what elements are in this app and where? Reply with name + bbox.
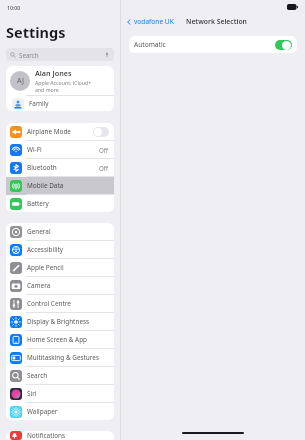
staticText: Settings [6, 22, 66, 42]
button[interactable]: Battery [6, 195, 114, 212]
staticText: Control Centre [27, 299, 109, 308]
button[interactable]: Siri [6, 385, 114, 403]
button[interactable]: Camera [6, 277, 114, 295]
button[interactable]: Apple Pencil [6, 259, 114, 277]
button[interactable]: Multitasking & Gestures [6, 349, 114, 367]
staticText: 10:00 [7, 4, 21, 11]
button[interactable]: General [6, 223, 114, 241]
staticText: Siri [27, 389, 109, 398]
staticText: Off [99, 164, 109, 172]
button[interactable]: Search [6, 48, 114, 61]
staticText: Family [29, 99, 49, 108]
staticText: Wallpaper [27, 407, 109, 416]
staticText: Display & Brightness [27, 317, 109, 326]
staticText: Airplane Mode [27, 127, 93, 136]
button[interactable]: Family [12, 96, 109, 111]
button[interactable]: Back to vodafone UK [126, 17, 174, 26]
staticText: Network Selection [186, 17, 247, 26]
staticText: Search [19, 51, 104, 59]
button[interactable]: Search [6, 367, 114, 385]
staticText: Multitasking & Gestures [27, 353, 109, 362]
button[interactable]: Airplane Mode [6, 123, 114, 141]
button[interactable]: Accessibility [6, 241, 114, 259]
button[interactable]: Display & Brightness [6, 313, 114, 331]
button[interactable]: Wallpaper [6, 403, 114, 420]
staticText: Apple Account, iCloud+ [35, 79, 92, 86]
staticText: Apple Pencil [27, 263, 109, 272]
staticText: Home Screen & App Library [27, 335, 109, 344]
staticText: Bluetooth [27, 163, 99, 172]
staticText: Automatic [134, 40, 275, 49]
staticText: General [27, 227, 109, 236]
staticText: Mobile Data [27, 181, 109, 190]
other: Airplane Mode off [93, 127, 109, 137]
staticText: Alan Jones [35, 68, 72, 78]
staticText: Camera [27, 281, 109, 290]
other: Automatic on [275, 40, 292, 50]
button[interactable]: Mobile Data [6, 177, 114, 195]
staticText: and more [35, 86, 59, 93]
staticText: AJ [17, 76, 24, 86]
other: Back to vodafone UK [126, 19, 132, 25]
button[interactable]: Control Centre [6, 295, 114, 313]
staticText: Search [27, 371, 109, 380]
staticText: Accessibility [27, 245, 109, 254]
button[interactable]: Notifications [6, 431, 114, 440]
staticText: Wi-Fi [27, 145, 99, 154]
button[interactable]: Automatic [129, 36, 297, 53]
button[interactable]: Home Screen & App Library [6, 331, 114, 349]
staticText: vodafone UK [134, 17, 174, 26]
button[interactable]: Wi-Fi [6, 141, 114, 159]
button[interactable]: Bluetooth [6, 159, 114, 177]
button[interactable]: AJ [10, 66, 110, 95]
staticText: Notifications [27, 431, 109, 440]
staticText: Battery [27, 199, 109, 208]
staticText: Off [99, 146, 109, 154]
